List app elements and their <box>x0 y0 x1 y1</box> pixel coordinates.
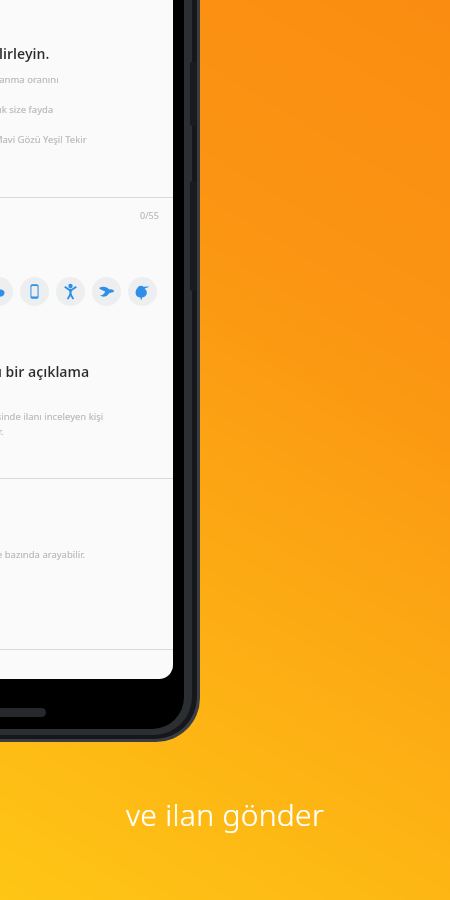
staticText: ve ilan gönder <box>0 794 450 835</box>
button[interactable]: Bird <box>92 277 121 306</box>
button[interactable]: Person <box>56 277 85 306</box>
button[interactable]: Bird <box>128 277 157 306</box>
staticText: Kullanıcılar ilçe bazında arayabilir. "İ… <box>0 548 109 591</box>
button[interactable]: Phone <box>20 277 49 306</box>
button[interactable]: Fish <box>0 277 13 306</box>
staticText: İyi bir başlık tıklanma oranını artırabi… <box>0 73 103 161</box>
staticText: 0/55 <box>140 209 159 221</box>
staticText: Açıklama sayesinde ilanı inceleyen kişi … <box>0 410 107 438</box>
staticText: Başlık belirleyin. <box>0 44 111 63</box>
staticText: Detaylı bir açıklama yazın. <box>0 362 127 400</box>
